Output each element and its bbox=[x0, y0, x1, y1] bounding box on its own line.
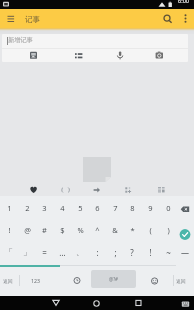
button[interactable] bbox=[27, 50, 39, 61]
button[interactable]: ? bbox=[123, 242, 141, 262]
button[interactable]: ( bbox=[141, 220, 159, 240]
staticText: 8 bbox=[130, 203, 135, 213]
staticText: @ bbox=[24, 225, 31, 235]
button[interactable] bbox=[72, 50, 84, 61]
staticText: 123 bbox=[31, 277, 40, 284]
staticText: ; bbox=[114, 247, 117, 258]
button[interactable] bbox=[28, 184, 40, 196]
staticText: 2 bbox=[25, 203, 30, 213]
staticText: 5 bbox=[78, 203, 83, 213]
staticText: 6 bbox=[95, 203, 100, 213]
button[interactable]: 9 bbox=[141, 198, 159, 218]
button[interactable]: : bbox=[88, 242, 106, 262]
button[interactable]: 123 bbox=[26, 273, 45, 288]
button[interactable] bbox=[153, 50, 165, 61]
button[interactable] bbox=[89, 296, 104, 310]
staticText: ! bbox=[149, 247, 152, 258]
staticText: 7 bbox=[113, 203, 118, 213]
button[interactable] bbox=[49, 296, 63, 310]
staticText: ^ bbox=[95, 225, 100, 235]
staticText: 、 bbox=[76, 247, 84, 257]
button[interactable]: — bbox=[176, 242, 194, 262]
button[interactable]: 0 bbox=[159, 198, 177, 218]
staticText: ) bbox=[167, 225, 170, 235]
staticText: 0 bbox=[166, 203, 171, 213]
staticText: ~ bbox=[166, 247, 171, 258]
staticText: 6:00 bbox=[178, 0, 189, 4]
button[interactable]: 4 bbox=[53, 198, 71, 218]
button[interactable]: = bbox=[35, 242, 53, 262]
button[interactable]: $ bbox=[53, 220, 71, 240]
staticText: 1 bbox=[7, 203, 12, 213]
button[interactable]: … bbox=[53, 242, 71, 262]
staticText: @?# bbox=[109, 276, 119, 282]
button[interactable]: * bbox=[123, 220, 141, 240]
staticText: ( bbox=[149, 225, 152, 235]
button[interactable]: ! bbox=[0, 220, 18, 240]
button[interactable] bbox=[59, 184, 72, 196]
staticText: * bbox=[130, 225, 135, 235]
button[interactable]: 7 bbox=[106, 198, 124, 218]
staticText: = bbox=[42, 247, 47, 258]
button[interactable]: # bbox=[35, 220, 53, 240]
staticText: 记事 bbox=[25, 15, 40, 24]
button[interactable]: 新增记事 bbox=[2, 34, 188, 48]
button[interactable] bbox=[90, 184, 104, 196]
staticText: 新增记事 bbox=[8, 36, 33, 44]
button[interactable]: 」 bbox=[18, 242, 36, 262]
staticText: ? bbox=[130, 247, 134, 258]
button[interactable] bbox=[178, 228, 192, 241]
button[interactable] bbox=[180, 13, 191, 25]
staticText: 返回 bbox=[3, 278, 13, 284]
button[interactable] bbox=[178, 203, 192, 216]
button[interactable]: ^ bbox=[88, 220, 106, 240]
button[interactable] bbox=[155, 184, 168, 196]
staticText: : bbox=[96, 247, 99, 258]
staticText: # bbox=[42, 225, 47, 235]
button[interactable] bbox=[70, 273, 84, 288]
button[interactable]: 返回 bbox=[0, 273, 17, 288]
staticText: 3 bbox=[42, 203, 47, 213]
button[interactable]: & bbox=[106, 220, 124, 240]
staticText: % bbox=[77, 225, 84, 235]
staticText: 」 bbox=[23, 247, 31, 257]
button[interactable] bbox=[131, 296, 146, 310]
staticText: $ bbox=[60, 225, 65, 235]
button[interactable] bbox=[122, 184, 135, 196]
button[interactable]: 6 bbox=[88, 198, 106, 218]
button[interactable]: 返回 bbox=[171, 273, 190, 288]
button[interactable]: 2 bbox=[18, 198, 36, 218]
button[interactable]: ) bbox=[159, 220, 177, 240]
staticText: 4 bbox=[60, 203, 65, 213]
staticText: ! bbox=[8, 225, 11, 235]
button[interactable] bbox=[178, 298, 192, 310]
staticText: 9 bbox=[148, 203, 153, 213]
button[interactable]: % bbox=[71, 220, 89, 240]
button[interactable] bbox=[161, 13, 174, 25]
button[interactable]: 1 bbox=[0, 198, 18, 218]
button[interactable]: ~ bbox=[159, 242, 177, 262]
staticText: — bbox=[181, 247, 189, 258]
button[interactable] bbox=[148, 273, 162, 288]
button[interactable]: 、 bbox=[71, 242, 89, 262]
staticText: 返回 bbox=[176, 278, 186, 284]
button[interactable]: 3 bbox=[35, 198, 53, 218]
button[interactable] bbox=[114, 50, 126, 61]
staticText: 「 bbox=[5, 247, 13, 257]
button[interactable]: @ bbox=[18, 220, 36, 240]
button[interactable]: ! bbox=[141, 242, 159, 262]
button[interactable]: ; bbox=[106, 242, 124, 262]
button[interactable]: @?# bbox=[91, 270, 136, 288]
button[interactable]: 8 bbox=[123, 198, 141, 218]
button[interactable]: 「 bbox=[0, 242, 18, 262]
staticText: & bbox=[112, 225, 118, 235]
button[interactable]: 5 bbox=[71, 198, 89, 218]
button[interactable] bbox=[4, 14, 18, 24]
staticText: … bbox=[59, 247, 66, 258]
